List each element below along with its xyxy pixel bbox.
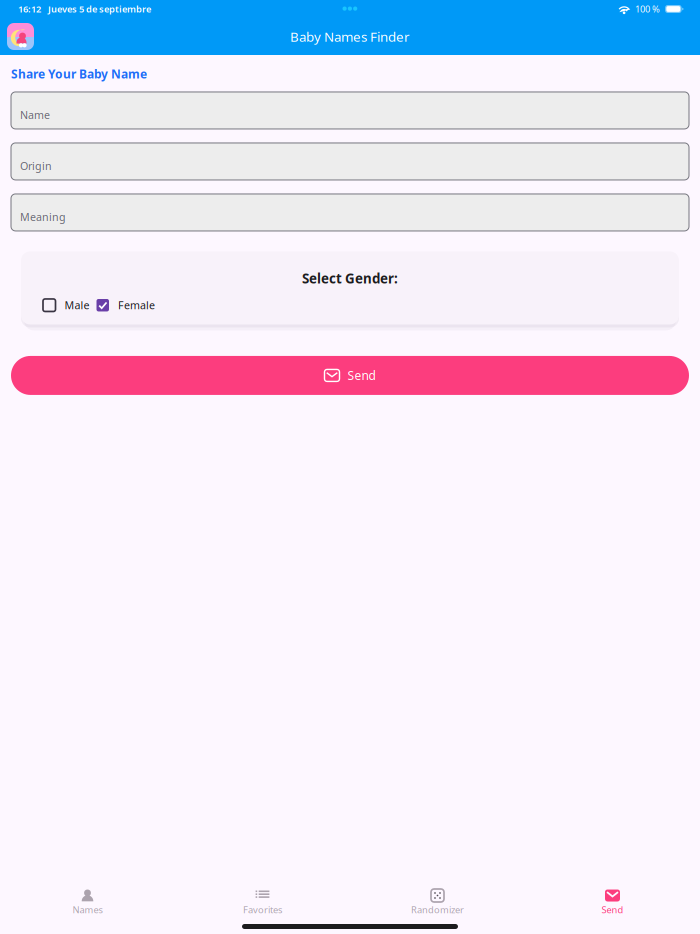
button[interactable]: Baby Names Finder app [0,23,34,50]
staticText: Name [20,108,50,122]
button[interactable]: Male [43,298,89,312]
button[interactable]: Meaning [11,194,689,231]
staticText: Send [347,367,375,383]
staticText: Send [601,903,623,916]
staticText: Randomizer [411,903,464,916]
staticText: 100 % [635,3,660,15]
staticText: Names [72,903,102,916]
staticText: Origin [20,159,52,173]
button[interactable]: Multitasking controls [338,2,361,15]
staticText: Baby Names Finder [290,28,410,45]
button[interactable]: Origin [11,143,689,180]
staticText: Male [64,298,89,312]
button[interactable]: Send [525,889,700,920]
staticText: 16:12 [18,3,41,15]
button[interactable]: Female [96,298,155,312]
button[interactable]: Names [0,889,175,920]
staticText: Meaning [20,210,66,224]
button[interactable]: Send [11,356,689,395]
staticText: Jueves 5 de septiembre [48,3,151,15]
button[interactable]: Name [11,92,689,129]
button[interactable]: Randomizer [350,889,525,920]
staticText: Favorites [243,903,282,916]
staticText: Select Gender: [302,269,398,287]
button[interactable]: Favorites [175,889,350,920]
staticText: Share Your Baby Name [11,66,147,82]
staticText: Female [118,298,155,312]
